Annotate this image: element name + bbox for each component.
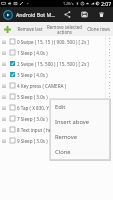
staticText: Remove selected actions: [47, 24, 82, 35]
button[interactable]: Clone: [50, 144, 110, 159]
button[interactable]: More options: [104, 91, 113, 102]
button[interactable]: 2 Swipe ( 15, 500 ) ( 15, 500 ) [ 2s ]: [0, 58, 113, 69]
button[interactable]: More options: [104, 124, 113, 135]
staticText: 2 Swipe ( 15, 500 ) ( 15, 500 ) [ 2s ]: [17, 61, 104, 67]
staticText: 9 Sleep ( 3.0s ): [17, 138, 104, 144]
button[interactable]: Remove: [50, 129, 110, 144]
staticText: Android Bot M...: [16, 11, 56, 18]
staticText: 6 Tap ( X 830, Y 1150 ): [17, 105, 104, 111]
button[interactable]: 4 Key press ( CAMERA ): [0, 80, 113, 91]
button[interactable]: Delete: [93, 7, 110, 22]
staticText: Remove: [55, 133, 77, 141]
staticText: Edit: [55, 103, 66, 111]
button[interactable]: 0 Swipe ( 15, 15 ) ( 900, 500 ) [ 2s ]: [0, 36, 113, 47]
button[interactable]: Share: [59, 7, 76, 22]
staticText: 8 Text input ( hello ): [17, 127, 104, 133]
button[interactable]: 8 Text input ( hello ): [0, 124, 113, 135]
staticText: Insert above: [55, 118, 90, 126]
staticText: 7 Sleep ( 3.0s ): [17, 116, 104, 122]
staticText: 4 Key press ( CAMERA ): [17, 83, 104, 89]
button[interactable]: Insert above: [50, 114, 110, 129]
button[interactable]: Add action: [0, 22, 14, 36]
staticText: Remove last: [17, 26, 43, 32]
button[interactable]: Save: [76, 7, 93, 22]
button[interactable]: 5 Sleep ( 3.0s ): [0, 91, 113, 102]
staticText: 1.2K/s: [63, 1, 74, 6]
staticText: Clone rows: [87, 26, 110, 32]
button[interactable]: 3 Sleep ( 4.0s ): [0, 69, 113, 80]
button[interactable]: 1 Sleep ( 4.0s ): [0, 47, 113, 58]
staticText: 1 Sleep ( 4.0s ): [17, 50, 104, 56]
button[interactable]: More options: [104, 36, 113, 47]
button[interactable]: Remove last: [14, 22, 45, 36]
button[interactable]: More options: [104, 80, 113, 91]
staticText: 2:07: [101, 0, 112, 7]
button[interactable]: 6 Tap ( X 830, Y 1150 ): [0, 102, 113, 113]
staticText: 0 Swipe ( 15, 15 ) ( 900, 500 ) [ 2s ]: [17, 39, 104, 45]
button[interactable]: More options: [104, 69, 113, 80]
button[interactable]: Remove selected actions: [45, 22, 83, 36]
button[interactable]: More options: [104, 58, 113, 69]
button[interactable]: More options: [104, 102, 113, 113]
button[interactable]: More options: [104, 47, 113, 58]
button[interactable]: 7 Sleep ( 3.0s ): [0, 113, 113, 124]
staticText: Clone: [55, 148, 71, 156]
staticText: 3 Sleep ( 4.0s ): [17, 72, 104, 78]
button[interactable]: More options: [104, 113, 113, 124]
button[interactable]: Edit: [50, 99, 110, 114]
staticText: 5 Sleep ( 3.0s ): [17, 94, 104, 100]
button[interactable]: 9 Sleep ( 3.0s ): [0, 135, 113, 146]
button[interactable]: Clone rows: [83, 22, 113, 36]
button[interactable]: More options: [104, 135, 113, 146]
